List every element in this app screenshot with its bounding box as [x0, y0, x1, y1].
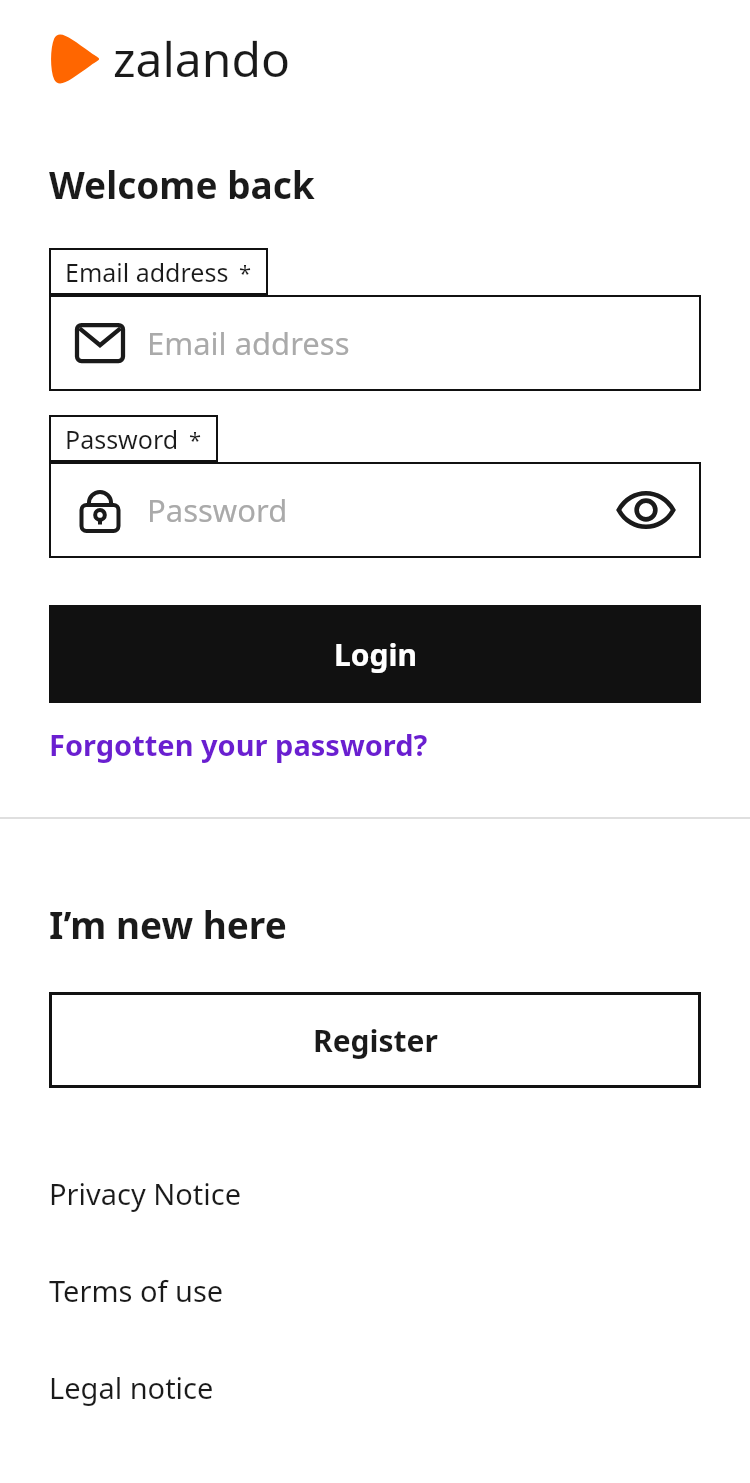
staticText: Terms of use	[49, 1271, 224, 1310]
button[interactable]: Privacy Notice	[0, 1174, 750, 1213]
staticText: Email address	[147, 322, 675, 364]
staticText: Register	[313, 1020, 438, 1061]
staticText: Email address	[65, 255, 229, 289]
staticText: Privacy Notice	[49, 1174, 242, 1213]
staticText: Login	[334, 634, 417, 675]
button[interactable]: Password	[49, 462, 701, 558]
staticText: Password	[147, 489, 617, 531]
staticText: *	[189, 424, 202, 454]
staticText: zalando	[113, 26, 291, 91]
button[interactable]: zalando	[49, 26, 291, 91]
staticText: Legal notice	[49, 1368, 214, 1407]
button[interactable]: Legal notice	[0, 1368, 750, 1407]
staticText: Welcome back	[49, 159, 315, 209]
staticText: *	[239, 257, 252, 287]
button[interactable]: Forgotten your password?	[49, 725, 428, 764]
button[interactable]: Show password	[617, 490, 675, 530]
button[interactable]: Terms of use	[0, 1271, 750, 1310]
staticText: Password	[65, 422, 179, 456]
staticText: Forgotten your password?	[49, 725, 428, 764]
button[interactable]: Register	[49, 992, 701, 1088]
staticText: I’m new here	[49, 899, 287, 949]
button[interactable]: Email address	[49, 295, 701, 391]
button[interactable]: Login	[49, 605, 701, 703]
